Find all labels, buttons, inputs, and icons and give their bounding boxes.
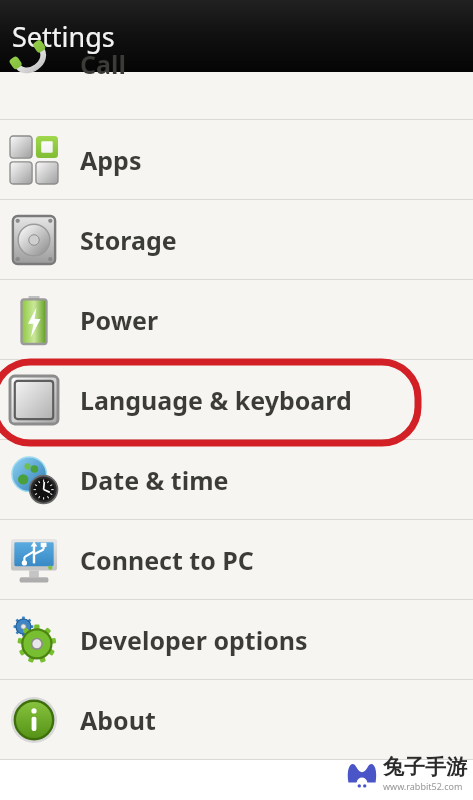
staticText: 兔子手游	[383, 754, 467, 780]
staticText: Storage	[80, 223, 177, 257]
button[interactable]: Developer options	[0, 600, 473, 680]
staticText: Power	[80, 303, 159, 337]
button[interactable]: Storage	[0, 200, 473, 280]
staticText: Developer options	[80, 623, 308, 657]
staticText: Language & keyboard	[80, 383, 352, 417]
staticText: www.rabbit52.com	[383, 780, 463, 792]
staticText: Apps	[80, 143, 142, 177]
staticText: Call	[80, 47, 126, 81]
button[interactable]: Power	[0, 280, 473, 360]
button[interactable]: Call	[0, 72, 473, 120]
button[interactable]: Connect to PC	[0, 520, 473, 600]
button[interactable]: About	[0, 680, 473, 760]
button[interactable]: Date & time	[0, 440, 473, 520]
staticText: About	[80, 703, 156, 737]
button[interactable]: Language & keyboard	[0, 360, 473, 440]
button[interactable]: Apps	[0, 120, 473, 200]
staticText: Date & time	[80, 463, 229, 497]
staticText: Settings	[12, 18, 115, 55]
staticText: Connect to PC	[80, 543, 254, 577]
